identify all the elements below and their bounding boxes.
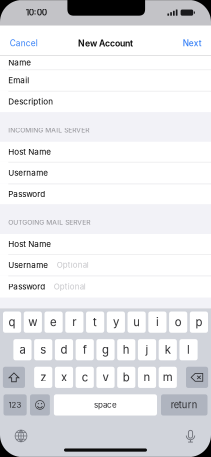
staticText: Description bbox=[8, 97, 53, 106]
button[interactable]: Next bbox=[168, 31, 211, 56]
button[interactable]: q bbox=[3, 311, 21, 333]
staticText: k bbox=[165, 343, 171, 357]
button[interactable]: Delete bbox=[186, 367, 208, 388]
staticText: j bbox=[145, 343, 148, 357]
staticText: v bbox=[102, 370, 108, 384]
staticText: 10:00 bbox=[26, 8, 47, 18]
button[interactable]: a bbox=[13, 339, 32, 360]
button[interactable]: c bbox=[76, 367, 94, 388]
button[interactable]: Emoji bbox=[30, 394, 50, 415]
button[interactable]: d bbox=[55, 339, 73, 360]
button[interactable]: e bbox=[44, 311, 63, 333]
staticText: c bbox=[82, 370, 88, 384]
staticText: OUTGOING MAIL SERVER bbox=[8, 218, 90, 226]
button[interactable]: Username bbox=[0, 162, 211, 184]
button[interactable]: Password bbox=[0, 184, 211, 204]
staticText: e bbox=[50, 315, 57, 329]
button[interactable]: f bbox=[76, 339, 94, 360]
staticText: space bbox=[94, 400, 117, 410]
staticText: Host Name bbox=[8, 147, 51, 157]
staticText: g bbox=[102, 343, 109, 357]
button[interactable]: Cancel bbox=[0, 31, 54, 56]
staticText: Cancel bbox=[10, 38, 38, 48]
staticText: l bbox=[187, 343, 190, 357]
staticText: i bbox=[156, 315, 159, 329]
button[interactable]: r bbox=[65, 311, 83, 333]
button[interactable]: g bbox=[96, 339, 115, 360]
staticText: a bbox=[19, 343, 25, 357]
button[interactable]: o bbox=[169, 311, 187, 333]
button[interactable]: n bbox=[138, 367, 156, 388]
staticText: Password bbox=[8, 189, 45, 199]
button[interactable]: v bbox=[96, 367, 115, 388]
button[interactable]: Password bbox=[0, 276, 211, 297]
button[interactable]: Name bbox=[0, 56, 211, 70]
staticText: d bbox=[60, 343, 67, 357]
button[interactable]: return bbox=[161, 394, 207, 415]
staticText: o bbox=[175, 315, 182, 329]
staticText: t bbox=[93, 315, 97, 329]
staticText: New Account bbox=[78, 38, 133, 48]
button[interactable]: l bbox=[179, 339, 198, 360]
staticText: p bbox=[195, 315, 202, 329]
staticText: return bbox=[171, 399, 198, 411]
button[interactable]: Host Name bbox=[0, 142, 211, 162]
button[interactable]: Description bbox=[0, 91, 211, 112]
button[interactable]: Shift bbox=[3, 367, 25, 388]
button[interactable]: b bbox=[117, 367, 135, 388]
staticText: Name bbox=[8, 58, 31, 67]
button[interactable]: k bbox=[159, 339, 177, 360]
button[interactable]: p bbox=[190, 311, 208, 333]
staticText: y bbox=[113, 315, 119, 329]
button[interactable]: Dictation bbox=[177, 429, 203, 443]
button[interactable]: x bbox=[55, 367, 73, 388]
staticText: m bbox=[163, 370, 173, 384]
button[interactable]: m bbox=[159, 367, 177, 388]
staticText: h bbox=[123, 343, 130, 357]
button[interactable]: z bbox=[34, 367, 52, 388]
staticText: w bbox=[28, 315, 37, 329]
staticText: Username bbox=[8, 260, 48, 270]
staticText: INCOMING MAIL SERVER bbox=[8, 126, 89, 134]
staticText: Optional bbox=[54, 282, 86, 291]
button[interactable]: u bbox=[128, 311, 146, 333]
staticText: Optional bbox=[57, 260, 89, 270]
button[interactable]: t bbox=[86, 311, 104, 333]
staticText: Next bbox=[183, 38, 202, 48]
button[interactable]: Host Name bbox=[0, 234, 211, 254]
staticText: r bbox=[72, 315, 76, 329]
staticText: z bbox=[40, 370, 46, 384]
button[interactable]: Username bbox=[0, 254, 211, 276]
button[interactable]: j bbox=[138, 339, 156, 360]
staticText: u bbox=[133, 315, 140, 329]
button[interactable]: space bbox=[54, 394, 157, 415]
button[interactable]: w bbox=[24, 311, 42, 333]
button[interactable]: i bbox=[148, 311, 166, 333]
staticText: Email bbox=[8, 75, 29, 85]
button[interactable]: h bbox=[117, 339, 135, 360]
staticText: f bbox=[83, 343, 87, 357]
staticText: Password bbox=[8, 282, 45, 291]
staticText: Host Name bbox=[8, 239, 51, 249]
staticText: 123 bbox=[9, 400, 22, 410]
staticText: n bbox=[143, 370, 150, 384]
staticText: x bbox=[61, 370, 67, 384]
button[interactable]: Next keyboard bbox=[8, 429, 34, 443]
staticText: s bbox=[40, 343, 46, 357]
button[interactable]: 123 bbox=[3, 394, 27, 415]
staticText: q bbox=[9, 315, 16, 329]
staticText: b bbox=[123, 370, 130, 384]
button[interactable]: y bbox=[107, 311, 125, 333]
staticText: Username bbox=[8, 168, 48, 178]
button[interactable]: s bbox=[34, 339, 52, 360]
button[interactable]: Email bbox=[0, 70, 211, 91]
